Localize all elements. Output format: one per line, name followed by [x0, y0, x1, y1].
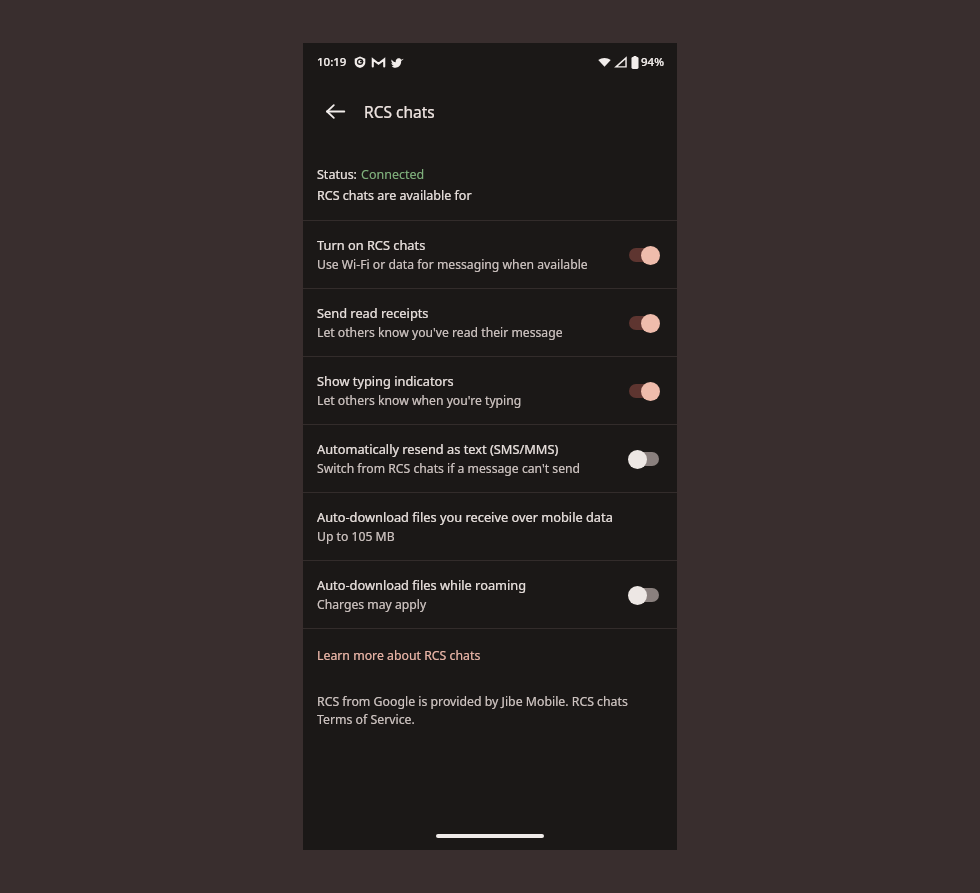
staticText: Charges may apply [317, 596, 427, 613]
staticText: Send read receipts [317, 304, 429, 321]
button[interactable]: Toggle off [625, 446, 663, 472]
staticText: Learn more about RCS chats [317, 647, 481, 664]
staticText: Let others know you've read their messag… [317, 324, 563, 341]
button[interactable]: Toggle on [625, 310, 663, 336]
button[interactable]: Toggle off [625, 582, 663, 608]
button[interactable]: Show typing indicators [303, 357, 677, 424]
button[interactable]: Auto-download files while roaming [303, 561, 677, 628]
staticText: Status: [317, 166, 361, 183]
button[interactable]: Send read receipts [303, 289, 677, 356]
button[interactable]: Back [315, 91, 355, 131]
button[interactable]: Toggle on [625, 378, 663, 404]
staticText: Switch from RCS chats if a message can't… [317, 460, 581, 477]
staticText: RCS chats are available for [317, 187, 472, 204]
staticText: Auto-download files while roaming [317, 576, 527, 593]
staticText: Connected [361, 166, 425, 183]
staticText: 10:19 [317, 54, 347, 70]
staticText: RCS from Google is provided by Jibe Mobi… [317, 693, 663, 728]
staticText: Turn on RCS chats [317, 236, 426, 253]
staticText: Let others know when you're typing [317, 392, 522, 409]
staticText: Use Wi-Fi or data for messaging when ava… [317, 256, 588, 273]
staticText: Up to 105 MB [317, 528, 395, 545]
button[interactable]: Toggle on [625, 242, 663, 268]
staticText: Auto-download files you receive over mob… [317, 508, 613, 525]
staticText: Show typing indicators [317, 372, 454, 389]
button[interactable]: Turn on RCS chats [303, 221, 677, 288]
staticText: RCS chats [364, 101, 435, 122]
staticText: 94% [641, 54, 664, 70]
staticText: Automatically resend as text (SMS/MMS) [317, 440, 559, 457]
button[interactable]: Auto-download files you receive over mob… [303, 493, 677, 560]
button[interactable]: Learn more about RCS chats [317, 647, 481, 664]
button[interactable]: Automatically resend as text (SMS/MMS) [303, 425, 677, 492]
